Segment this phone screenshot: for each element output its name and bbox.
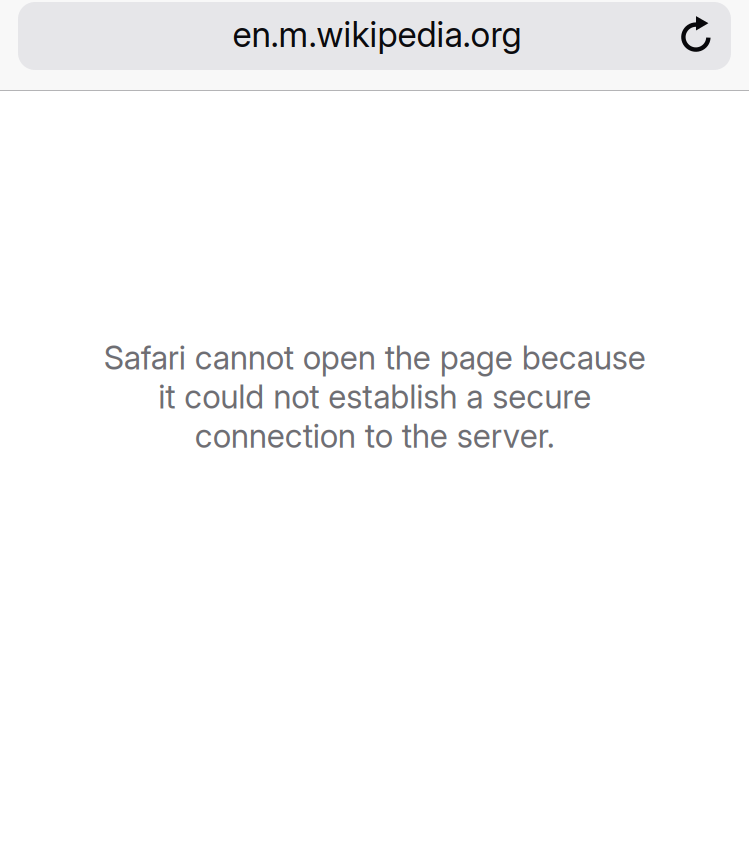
- button[interactable]: Reload: [670, 14, 731, 57]
- staticText: Safari cannot open the page because it c…: [103, 338, 645, 456]
- staticText: en.m.wikipedia.org: [232, 13, 521, 55]
- button[interactable]: en.m.wikipedia.org: [18, 2, 731, 70]
